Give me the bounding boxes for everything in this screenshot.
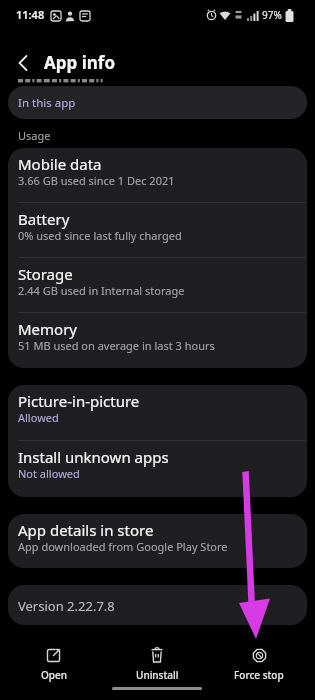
staticText: App downloaded from Google Play Store [18,539,228,554]
button[interactable]: Version 2.22.7.8 [8,585,307,625]
staticText: Install unknown apps [18,447,169,467]
button[interactable]: Open [24,640,84,685]
staticText: Uninstall [136,668,179,682]
button[interactable]: App details in store [8,514,307,568]
staticText: Version 2.22.7.8 [18,597,115,615]
button[interactable]: Install unknown apps [8,441,307,497]
button[interactable]: Memory [8,313,307,368]
button[interactable]: In this app [8,86,307,119]
staticText: In this app [18,95,76,111]
button[interactable]: Battery [8,203,307,258]
staticText: 3.66 GB used since 1 Dec 2021 [18,173,175,188]
button[interactable]: Uninstall [127,640,187,685]
staticText: Usage [18,128,51,143]
staticText: Storage [18,264,73,284]
staticText: 11:48 [16,7,45,22]
staticText: Picture-in-picture [18,391,140,411]
staticText: Battery [18,209,70,229]
staticText: 97% [262,8,282,22]
staticText: Open [41,668,68,682]
staticText: Allowed [18,410,59,425]
staticText: 0% used since last fully charged [18,228,182,243]
button[interactable]: Force stop [228,640,290,685]
button[interactable]: Storage [8,258,307,313]
staticText: Force stop [234,668,284,682]
button[interactable]: Mobile data [8,148,307,203]
staticText: Mobile data [18,154,102,174]
staticText: Memory [18,319,78,339]
staticText: 2.44 GB used in Internal storage [18,283,185,298]
staticText: App info [44,51,116,74]
button[interactable]: Picture-in-picture [8,385,307,441]
staticText: Not allowed [18,466,80,481]
staticText: App details in store [18,520,154,540]
staticText: 51 MB used on average in last 3 hours [18,338,215,353]
button[interactable] [6,48,40,78]
